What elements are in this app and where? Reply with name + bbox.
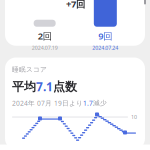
staticText: 10 bbox=[131, 113, 137, 121]
staticText: 2024.07.19 bbox=[32, 44, 58, 51]
staticText: 2024.07.24 bbox=[92, 44, 118, 51]
staticText: 睡眠スコア bbox=[12, 65, 47, 74]
staticText: +7回 bbox=[66, 0, 85, 10]
staticText: 9回 bbox=[98, 30, 112, 42]
button[interactable]: 2回 bbox=[5, 0, 145, 51]
staticText: 2回 bbox=[38, 30, 52, 42]
button[interactable]: 睡眠スコア bbox=[5, 57, 145, 149]
staticText: 平均 bbox=[12, 79, 36, 94]
staticText: 点数 bbox=[53, 79, 77, 94]
staticText: 減少 bbox=[93, 99, 107, 107]
staticText: 7.1 bbox=[36, 79, 53, 95]
staticText: 2024年 07月 19日より bbox=[12, 99, 83, 107]
staticText: 1.7 bbox=[83, 99, 93, 107]
